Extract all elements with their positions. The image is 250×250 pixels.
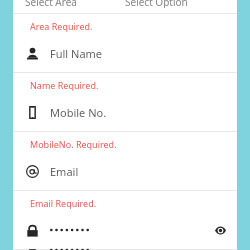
- button[interactable]: Select Area: [13, 0, 237, 13]
- staticText: Email Required.: [30, 197, 97, 209]
- staticText: Area Required.: [30, 20, 93, 32]
- button[interactable]: Show password: [209, 219, 231, 241]
- button[interactable]: Mobile No.: [13, 99, 237, 125]
- staticText: Full Name: [50, 46, 103, 61]
- staticText: Email: [50, 164, 79, 179]
- staticText: Select Area: [25, 0, 77, 8]
- staticText: Name Required.: [30, 79, 99, 91]
- button[interactable]: Show password: [13, 217, 237, 243]
- staticText: MobileNo. Required.: [30, 138, 117, 150]
- staticText: Mobile No.: [50, 105, 107, 120]
- button[interactable]: Full Name: [13, 40, 237, 66]
- staticText: Select Option: [125, 0, 188, 8]
- button[interactable]: Email: [13, 158, 237, 184]
